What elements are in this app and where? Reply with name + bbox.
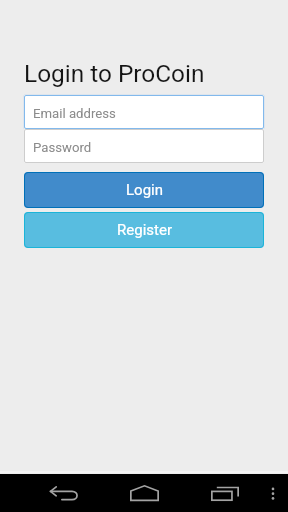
staticText: Login to ProCoin xyxy=(24,59,205,88)
button[interactable]: Login xyxy=(24,172,264,208)
button[interactable]: Register xyxy=(24,212,264,248)
button[interactable]: Password xyxy=(24,129,264,163)
button[interactable]: Email address xyxy=(24,95,264,129)
button[interactable]: Home xyxy=(118,474,170,512)
staticText: Email address xyxy=(33,106,116,121)
button[interactable]: Back xyxy=(38,474,88,512)
staticText: Login xyxy=(126,181,163,199)
staticText: Register xyxy=(117,221,172,239)
staticText: Password xyxy=(33,140,92,155)
button[interactable]: More options xyxy=(260,474,285,512)
button[interactable]: Recent apps xyxy=(200,474,250,512)
